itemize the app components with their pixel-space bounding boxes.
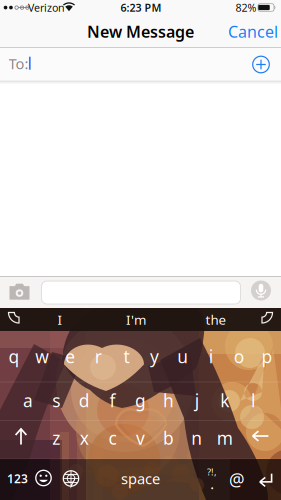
button[interactable]: x [70, 418, 98, 457]
staticText: y [150, 345, 159, 368]
staticText: q [9, 345, 20, 368]
staticText: t [123, 345, 129, 368]
button[interactable]: j [183, 381, 211, 419]
button[interactable]: Add Contact [251, 54, 271, 75]
button[interactable]: v [126, 418, 155, 457]
staticText: g [135, 389, 146, 412]
button[interactable]: Delete [251, 428, 270, 443]
staticText: n [191, 426, 202, 449]
button[interactable]: Camera [8, 282, 30, 301]
button[interactable]: s [42, 381, 70, 419]
staticText: e [65, 345, 75, 368]
staticText: ?!, [207, 466, 217, 478]
button[interactable]: Next Keyboard [62, 469, 80, 488]
button[interactable]: I'm [105, 308, 167, 331]
button[interactable]: b [155, 418, 183, 457]
staticText: a [23, 389, 33, 412]
staticText: h [163, 389, 174, 412]
button[interactable]: Swipe Left [5, 310, 33, 331]
staticText: r [95, 345, 102, 368]
button[interactable]: k [211, 381, 239, 419]
button[interactable]: u [169, 331, 197, 382]
button[interactable]: w [28, 331, 56, 382]
staticText: d [79, 389, 90, 412]
staticText: x [80, 426, 89, 449]
staticText: . [210, 476, 213, 492]
staticText: b [163, 426, 174, 449]
staticText: l [251, 389, 255, 412]
staticText: i [209, 345, 213, 368]
button[interactable]: q [0, 331, 28, 382]
button[interactable]: f [98, 381, 126, 419]
staticText: 123 [7, 470, 28, 486]
staticText: p [261, 345, 272, 368]
staticText: I'm [126, 311, 146, 328]
button[interactable]: l [239, 381, 267, 419]
staticText: s [52, 389, 60, 412]
button[interactable]: g [126, 381, 155, 419]
staticText: j [195, 389, 199, 412]
button[interactable]: d [70, 381, 98, 419]
button[interactable]: space [85, 458, 195, 499]
staticText: u [177, 345, 188, 368]
button[interactable]: Return [258, 472, 274, 487]
staticText: Cancel [228, 21, 278, 42]
button[interactable]: Swipe Right [248, 310, 276, 331]
button[interactable]: e [56, 331, 84, 382]
staticText: Verizon [28, 0, 65, 15]
button[interactable]: o [225, 331, 253, 382]
button[interactable]: Cancel [223, 16, 281, 47]
staticText: w [35, 345, 49, 368]
staticText: f [109, 389, 115, 412]
staticText: c [108, 426, 116, 449]
staticText: 6:23 PM [120, 0, 161, 15]
button[interactable]: m [211, 418, 239, 457]
staticText: New Message [87, 21, 194, 42]
button[interactable]: Dictate [251, 280, 271, 300]
button[interactable]: @ [225, 464, 249, 494]
staticText: 82% [235, 0, 256, 15]
staticText: To: [8, 54, 28, 73]
staticText: z [52, 426, 60, 449]
button[interactable]: z [42, 418, 70, 457]
button[interactable]: p [253, 331, 281, 382]
button[interactable]: a [14, 381, 42, 419]
button[interactable]: 123 [2, 458, 32, 499]
button[interactable]: I [29, 308, 91, 331]
button[interactable]: y [140, 331, 169, 382]
staticText: space [121, 469, 160, 488]
staticText: o [234, 345, 244, 368]
button[interactable]: r [84, 331, 112, 382]
button[interactable]: n [183, 418, 211, 457]
staticText: m [217, 426, 233, 449]
button[interactable]: c [98, 418, 126, 457]
button[interactable]: t [112, 331, 140, 382]
button[interactable]: Punctuation [199, 465, 225, 493]
button[interactable]: h [154, 381, 183, 419]
staticText: I [57, 311, 62, 328]
button[interactable]: Shift [7, 423, 35, 450]
staticText: k [220, 389, 229, 412]
button[interactable]: Emoji [34, 469, 53, 487]
staticText: v [136, 426, 145, 449]
button[interactable]: i [197, 331, 225, 382]
staticText: @ [229, 468, 245, 491]
button[interactable]: the [185, 308, 247, 331]
staticText: the [205, 311, 226, 328]
